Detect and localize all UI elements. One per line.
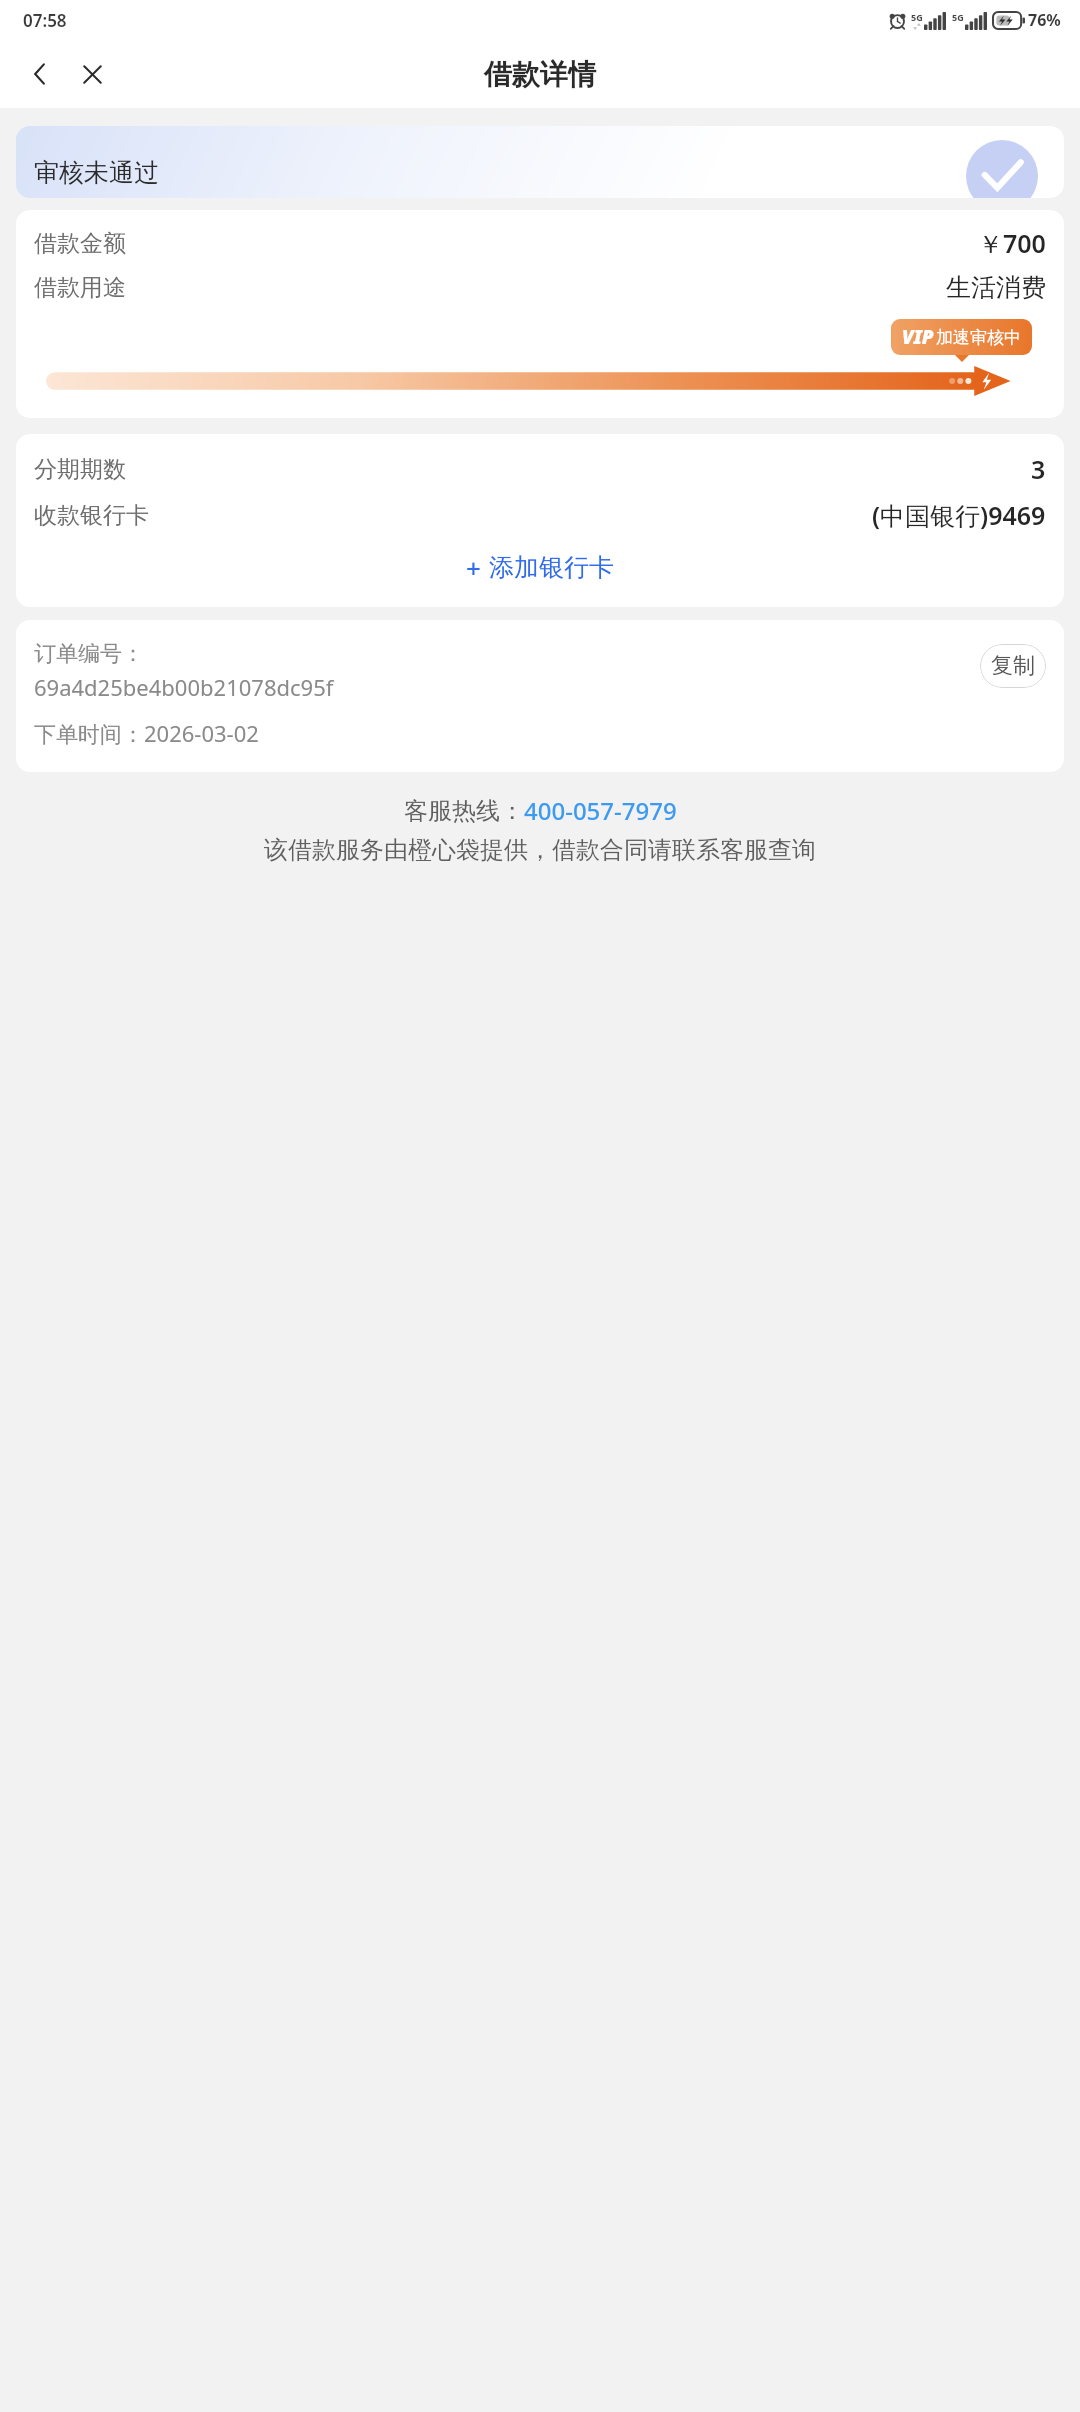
staticText: 07:58 <box>23 9 67 32</box>
button[interactable]: 400-057-7979 <box>524 794 677 827</box>
staticText: 分期期数 <box>34 455 126 484</box>
staticText: 加速审核中 <box>936 327 1021 348</box>
staticText: 客服热线： <box>404 796 524 826</box>
button[interactable]: + <box>458 546 622 589</box>
staticText: 400-057-7979 <box>524 794 677 827</box>
staticText: ￥700 <box>978 226 1046 260</box>
staticText: 3 <box>1031 452 1046 486</box>
button[interactable]: Back <box>14 48 66 100</box>
button[interactable]: Close <box>66 48 118 100</box>
staticText: 5G <box>952 11 964 23</box>
button[interactable]: 审核未通过 <box>16 126 1064 198</box>
staticText: (中国银行)9469 <box>872 498 1046 532</box>
staticText: 借款详情 <box>484 57 596 92</box>
staticText: 订单编号： <box>34 640 144 668</box>
staticText: 5G <box>911 11 923 23</box>
staticText: 借款用途 <box>34 273 126 302</box>
staticText: VIP <box>902 324 934 350</box>
staticText: 下单时间：2026-03-02 <box>34 718 259 748</box>
staticText: 审核未通过 <box>34 157 159 188</box>
staticText: + <box>466 550 481 585</box>
staticText: 添加银行卡 <box>489 552 614 583</box>
staticText: 复制 <box>991 652 1035 680</box>
staticText: 借款金额 <box>34 229 126 258</box>
staticText: 该借款服务由橙心袋提供，借款合同请联系客服查询 <box>264 835 816 865</box>
staticText: 生活消费 <box>946 272 1046 303</box>
staticText: 69a4d25be4b00b21078dc95f <box>34 672 334 702</box>
staticText: 收款银行卡 <box>34 501 149 530</box>
button[interactable]: 复制 <box>980 644 1046 688</box>
button[interactable]: VIP <box>902 324 1021 350</box>
staticText: 76% <box>1028 9 1061 31</box>
